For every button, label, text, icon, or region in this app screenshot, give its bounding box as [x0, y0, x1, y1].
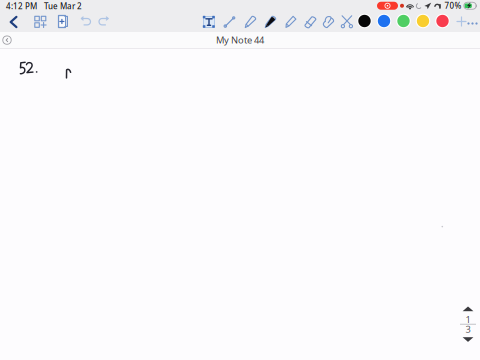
- button[interactable]: Scissors: [340, 14, 354, 29]
- button[interactable]: Next page: [459, 334, 477, 346]
- button[interactable]: Add colour: [455, 15, 468, 28]
- button[interactable]: Pen: [264, 14, 278, 29]
- staticText: 3: [465, 323, 470, 335]
- button[interactable]: Text box: [202, 15, 216, 29]
- button[interactable]: More options: [467, 19, 478, 27]
- button[interactable]: Line tool: [222, 15, 236, 29]
- button[interactable]: Back: [5, 14, 21, 29]
- staticText: 4:12 PM: [6, 1, 37, 11]
- button[interactable]: New page: [55, 14, 70, 29]
- button[interactable]: Undo: [78, 16, 93, 28]
- button[interactable]: Colour: [376, 13, 391, 28]
- button[interactable]: Collapse sidebar: [2, 36, 11, 45]
- button[interactable]: Pencil: [244, 14, 258, 29]
- button[interactable]: Eraser: [303, 16, 318, 29]
- button[interactable]: Colour: [396, 13, 411, 28]
- button[interactable]: Lasso: [322, 14, 336, 29]
- button[interactable]: Page grid: [33, 15, 48, 29]
- staticText: 1: [465, 313, 470, 325]
- button[interactable]: Highlighter: [284, 14, 298, 29]
- button[interactable]: Previous page: [459, 303, 477, 315]
- button[interactable]: Colour: [435, 13, 450, 28]
- staticText: Tue Mar 2: [44, 1, 82, 11]
- button[interactable]: Colour: [357, 13, 372, 28]
- staticText: 70%: [444, 0, 461, 11]
- button[interactable]: Redo: [96, 16, 111, 28]
- staticText: My Note 44: [216, 34, 264, 46]
- button[interactable]: Colour: [415, 13, 430, 28]
